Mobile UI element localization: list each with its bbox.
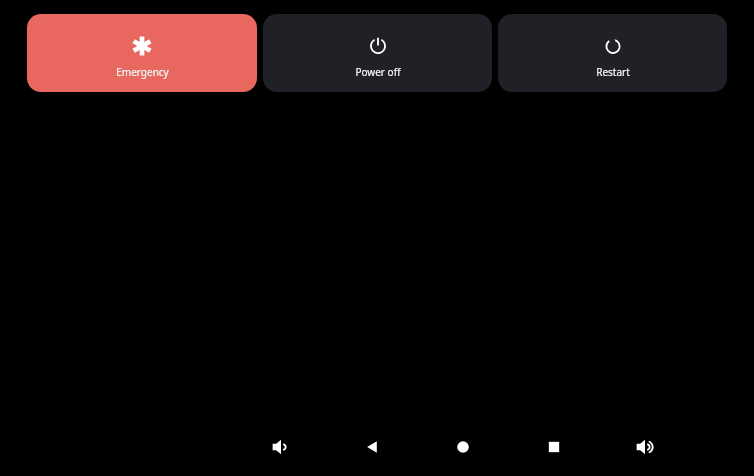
staticText: Restart <box>596 65 630 79</box>
button[interactable]: Restart <box>498 14 727 92</box>
button[interactable]: Emergency <box>27 14 257 92</box>
button[interactable]: Power off <box>263 14 492 92</box>
button[interactable]: Volume up <box>621 423 669 471</box>
staticText: Power off <box>355 65 401 79</box>
button[interactable]: Volume down <box>257 423 305 471</box>
button[interactable]: Recent apps <box>530 423 578 471</box>
button[interactable]: Back <box>348 423 396 471</box>
staticText: Emergency <box>116 65 169 79</box>
button[interactable]: Home <box>439 423 487 471</box>
